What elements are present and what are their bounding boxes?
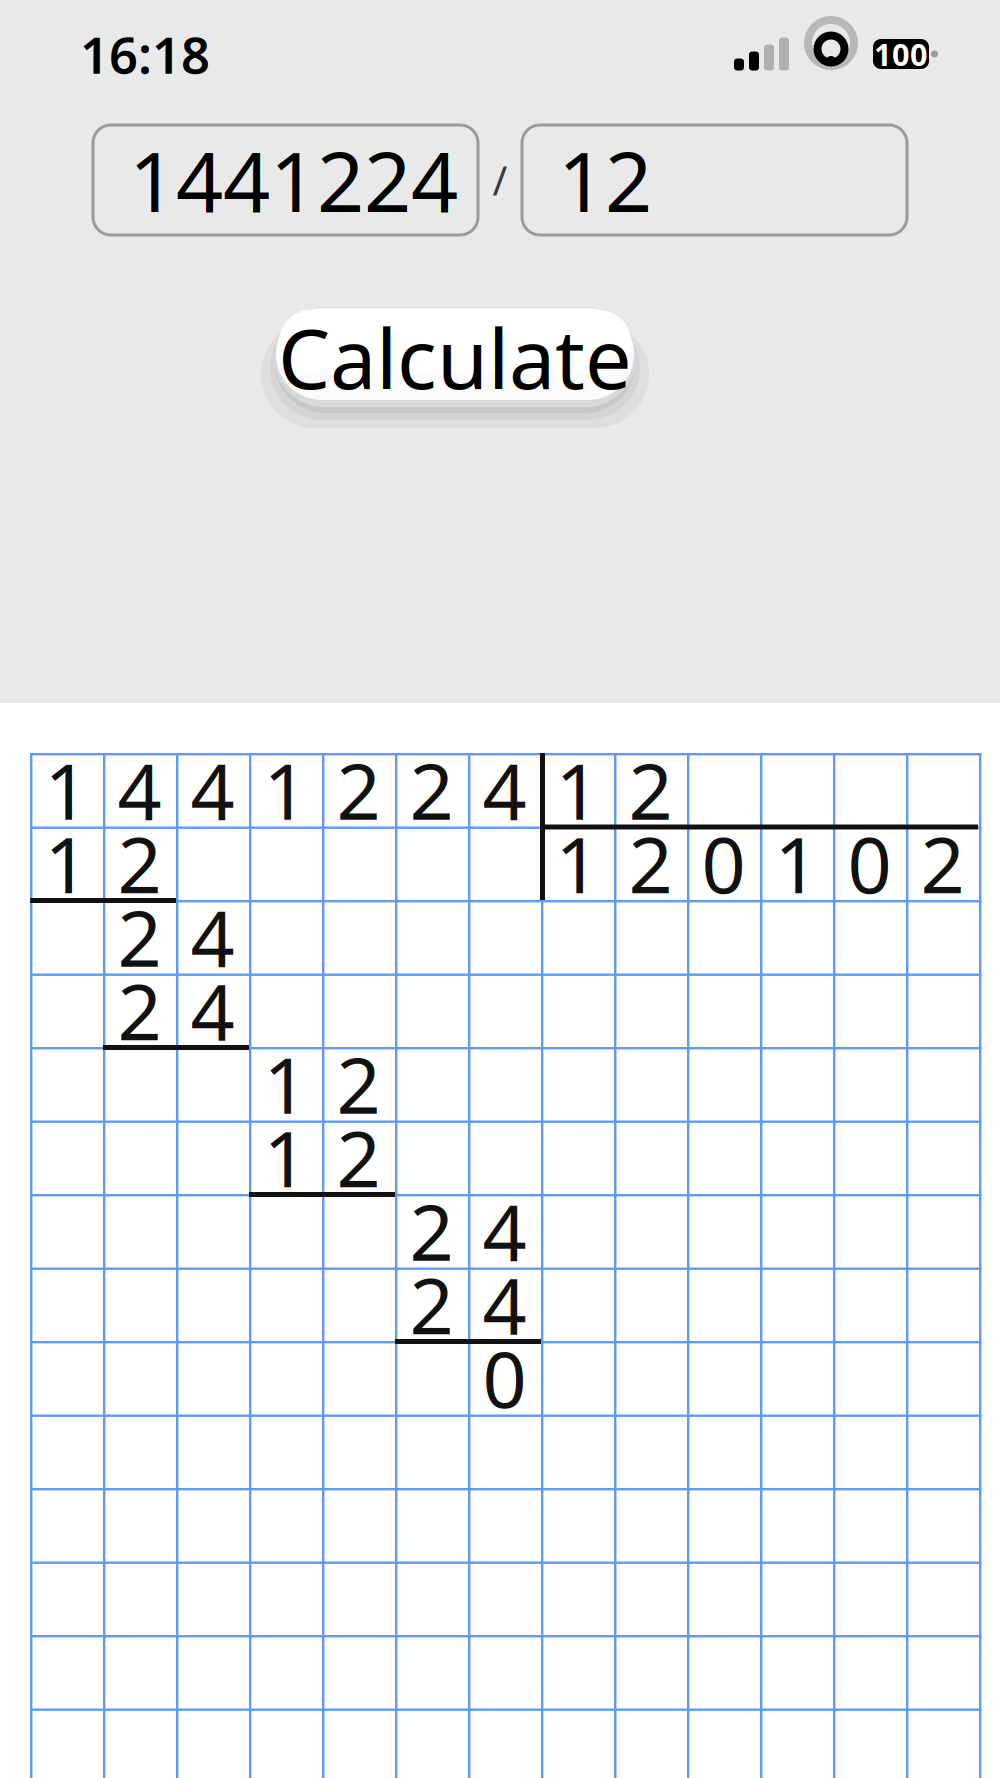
staticText: 2 — [117, 885, 161, 988]
staticText: 4 — [482, 738, 526, 841]
button[interactable]: 12 — [522, 125, 907, 235]
staticText: 1441224 — [129, 125, 458, 235]
staticText: 0 — [701, 812, 745, 915]
staticText: 1 — [44, 738, 88, 841]
staticText: 4 — [190, 885, 234, 988]
staticText: 2 — [117, 812, 161, 915]
staticText: 2 — [628, 738, 672, 841]
staticText: 12 — [558, 125, 652, 235]
staticText: 16:18 — [80, 20, 210, 88]
staticText: 4 — [190, 959, 234, 1062]
staticText: Calculate — [278, 302, 632, 412]
staticText: 4 — [482, 1179, 526, 1282]
staticText: 100 — [874, 34, 928, 74]
staticText: 0 — [482, 1326, 526, 1429]
staticText: 2 — [409, 1253, 453, 1356]
staticText: 2 — [336, 1032, 380, 1135]
staticText: 1 — [774, 812, 818, 915]
staticText: 4 — [190, 738, 234, 841]
staticText: 1 — [263, 738, 307, 841]
staticText: 2 — [117, 959, 161, 1062]
staticText: 2 — [409, 1179, 453, 1282]
staticText: 1 — [555, 812, 599, 915]
staticText: 4 — [482, 1253, 526, 1356]
staticText: 1 — [44, 812, 88, 915]
staticText: 2 — [336, 1106, 380, 1209]
staticText: / — [492, 153, 507, 206]
staticText: 2 — [628, 812, 672, 915]
staticText: 0 — [847, 812, 891, 915]
staticText: 2 — [409, 738, 453, 841]
staticText: 1 — [263, 1032, 307, 1135]
button[interactable]: Calculate — [255, 282, 655, 432]
staticText: 4 — [117, 738, 161, 841]
staticText: 2 — [920, 812, 964, 915]
staticText: 2 — [336, 738, 380, 841]
staticText: 1 — [555, 738, 599, 841]
staticText: 1 — [263, 1106, 307, 1209]
button[interactable]: 1441224 — [93, 125, 478, 235]
